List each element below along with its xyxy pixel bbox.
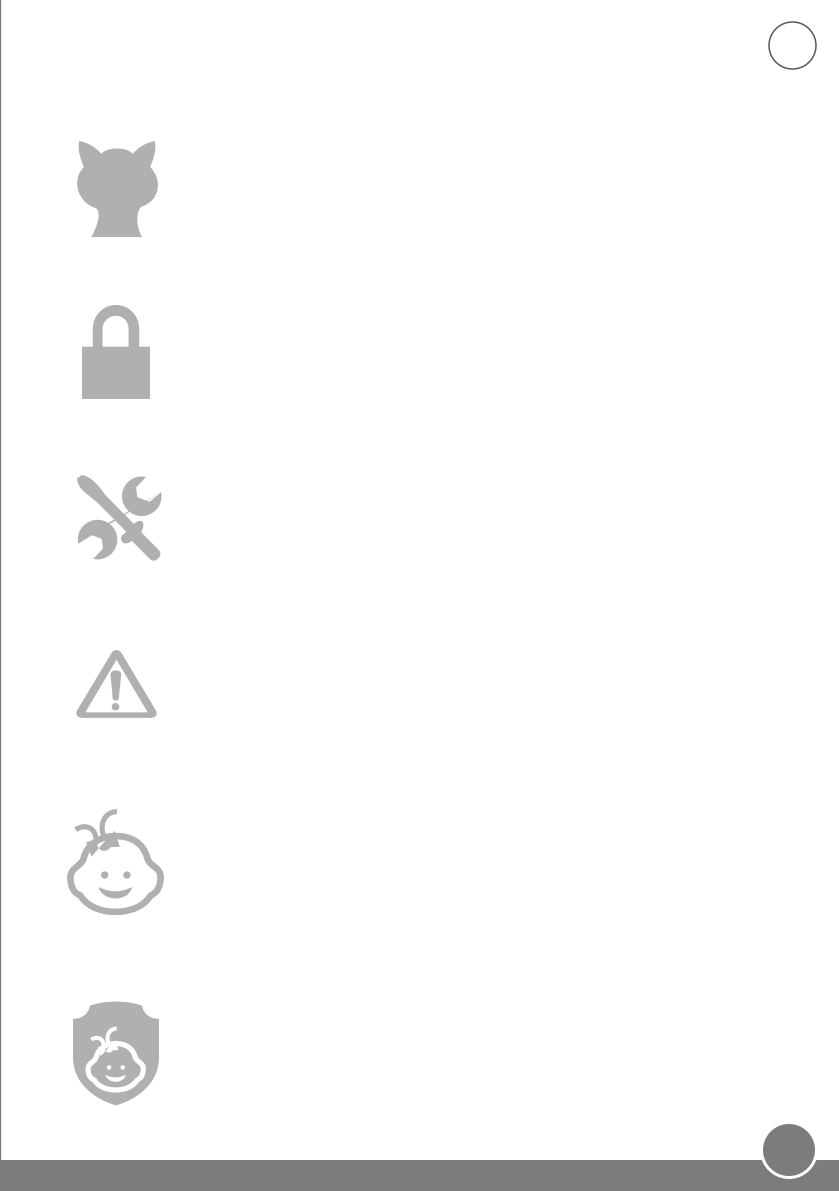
button[interactable]: Tools	[77, 475, 162, 561]
button[interactable]: Kids	[67, 809, 165, 915]
button[interactable]: Add	[760, 1121, 818, 1179]
button[interactable]: Pets	[76, 141, 158, 237]
button[interactable]: Alerts	[76, 650, 157, 720]
button[interactable]: Kids safety	[73, 1001, 159, 1106]
button[interactable]: Account	[769, 22, 816, 69]
button[interactable]: Privacy	[82, 305, 150, 399]
